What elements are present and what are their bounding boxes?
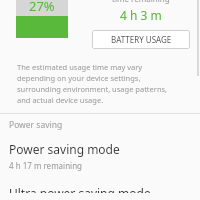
button[interactable]: BATTERY USAGE bbox=[92, 30, 190, 49]
staticText: 4 h 17 m remaining bbox=[9, 160, 83, 171]
staticText: The estimated usage time may vary depend… bbox=[17, 62, 178, 105]
staticText: 4 h 3 m bbox=[120, 7, 162, 23]
staticText: Power saving mode bbox=[9, 141, 120, 157]
staticText: 27% bbox=[29, 0, 55, 15]
staticText: BATTERY USAGE bbox=[111, 34, 172, 45]
button[interactable]: Ultra power saving mode bbox=[0, 178, 200, 200]
staticText: Ultra power saving mode bbox=[9, 185, 151, 193]
staticText: time remaining bbox=[112, 0, 170, 4]
button[interactable]: Power saving mode bbox=[0, 134, 200, 178]
staticText: Power saving bbox=[9, 119, 63, 131]
